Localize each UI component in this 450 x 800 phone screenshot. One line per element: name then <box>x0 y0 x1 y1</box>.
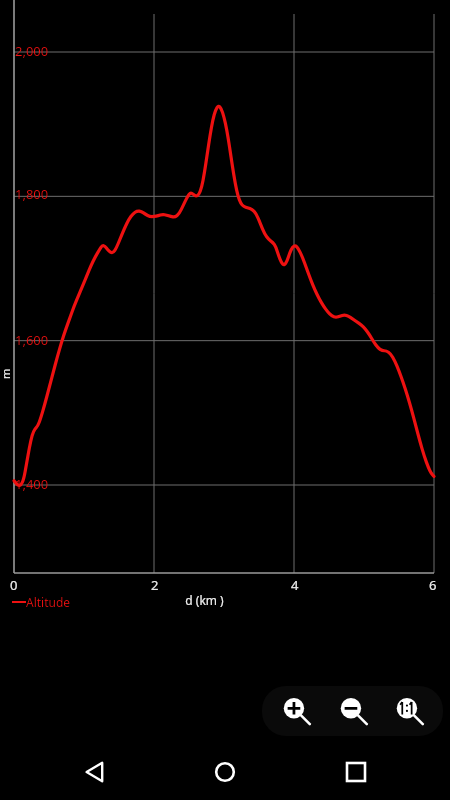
button[interactable]: Home <box>189 744 261 800</box>
button[interactable]: Reset zoom <box>387 689 431 733</box>
button[interactable]: Recent apps <box>320 744 392 800</box>
button[interactable]: Zoom out <box>331 689 375 733</box>
staticText: m <box>0 368 13 379</box>
staticText: 2,000 <box>15 42 49 60</box>
staticText: 1,800 <box>15 185 49 203</box>
staticText: 1,600 <box>15 331 49 349</box>
button[interactable]: Zoom in <box>274 689 318 733</box>
staticText: Altitude <box>26 594 71 610</box>
staticText: d (km ) <box>185 592 224 608</box>
staticText: 4 <box>291 576 299 594</box>
button[interactable]: Back <box>59 744 131 800</box>
staticText: 0 <box>10 576 18 594</box>
staticText: 2 <box>151 576 159 594</box>
staticText: 6 <box>429 576 437 594</box>
staticText: 1,400 <box>15 475 49 493</box>
